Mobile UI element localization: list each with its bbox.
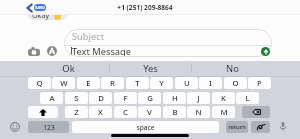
- staticText: Y: [159, 78, 164, 89]
- button[interactable]: Back: [26, 1, 46, 13]
- button[interactable]: X: [89, 106, 112, 118]
- staticText: B: [172, 107, 178, 118]
- button[interactable]: H: [163, 92, 186, 104]
- button[interactable]: space: [72, 121, 219, 133]
- button[interactable]: L: [236, 92, 259, 104]
- staticText: L: [245, 93, 250, 104]
- staticText: Okay: [32, 10, 50, 20]
- staticText: E: [86, 78, 91, 89]
- button[interactable]: U: [175, 77, 198, 89]
- staticText: T: [135, 78, 140, 89]
- button[interactable]: E: [77, 77, 100, 89]
- button[interactable]: O: [224, 77, 247, 89]
- staticText: space: [136, 123, 155, 132]
- staticText: J: [197, 93, 200, 104]
- staticText: R: [110, 78, 115, 89]
- button[interactable]: Backspace: [242, 106, 270, 118]
- staticText: V: [147, 107, 152, 118]
- button[interactable]: W: [52, 77, 75, 89]
- staticText: Z: [74, 107, 79, 118]
- button[interactable]: D: [89, 92, 112, 104]
- button[interactable]: T: [126, 77, 149, 89]
- button[interactable]: G: [138, 92, 161, 104]
- staticText: N: [195, 107, 202, 118]
- staticText: P: [257, 78, 262, 89]
- button[interactable]: K: [212, 92, 235, 104]
- staticText: Yes: [143, 62, 158, 75]
- button[interactable]: return: [226, 121, 248, 133]
- button[interactable]: App Store: [45, 44, 59, 58]
- staticText: S: [74, 93, 79, 104]
- staticText: A: [49, 93, 55, 104]
- button[interactable]: Q: [28, 77, 51, 89]
- staticText: No: [226, 62, 239, 75]
- button[interactable]: M: [212, 106, 235, 118]
- button[interactable]: Send: [261, 47, 270, 56]
- button[interactable]: Y: [150, 77, 173, 89]
- staticText: D: [98, 93, 104, 104]
- staticText: H: [172, 93, 178, 104]
- staticText: Subject: [72, 30, 105, 43]
- button[interactable]: F: [114, 92, 137, 104]
- button[interactable]: N: [187, 106, 210, 118]
- button[interactable]: P: [248, 77, 271, 89]
- staticText: 123: [43, 123, 55, 132]
- button[interactable]: Handwriting: [251, 121, 270, 133]
- button[interactable]: B: [163, 106, 186, 118]
- staticText: F: [123, 93, 128, 104]
- staticText: I: [209, 78, 212, 89]
- staticText: G: [147, 93, 153, 104]
- staticText: 5490: [35, 5, 45, 11]
- staticText: Text Message: [72, 45, 132, 57]
- staticText: return: [228, 123, 246, 131]
- button[interactable]: Dictate: [276, 120, 289, 133]
- button[interactable]: J: [187, 92, 210, 104]
- button[interactable]: C: [114, 106, 137, 118]
- staticText: W: [60, 78, 68, 89]
- button[interactable]: I: [199, 77, 222, 89]
- button[interactable]: Shift: [28, 106, 58, 118]
- button[interactable]: S: [65, 92, 88, 104]
- staticText: Q: [36, 78, 43, 89]
- button[interactable]: Z: [65, 106, 88, 118]
- button[interactable]: R: [101, 77, 124, 89]
- staticText: X: [98, 107, 103, 118]
- button[interactable]: Emoji: [8, 120, 21, 133]
- staticText: K: [221, 93, 226, 104]
- staticText: M: [220, 107, 228, 118]
- staticText: O: [232, 78, 239, 89]
- button[interactable]: A: [40, 92, 63, 104]
- staticText: U: [184, 78, 190, 89]
- button[interactable]: Camera: [27, 44, 41, 58]
- button[interactable]: V: [138, 106, 161, 118]
- button[interactable]: 123: [28, 121, 69, 133]
- staticText: +1 (251) 209-8864: [117, 3, 173, 12]
- staticText: C: [123, 107, 128, 118]
- staticText: Ok: [62, 62, 75, 75]
- button[interactable]: Subject: [64, 29, 272, 57]
